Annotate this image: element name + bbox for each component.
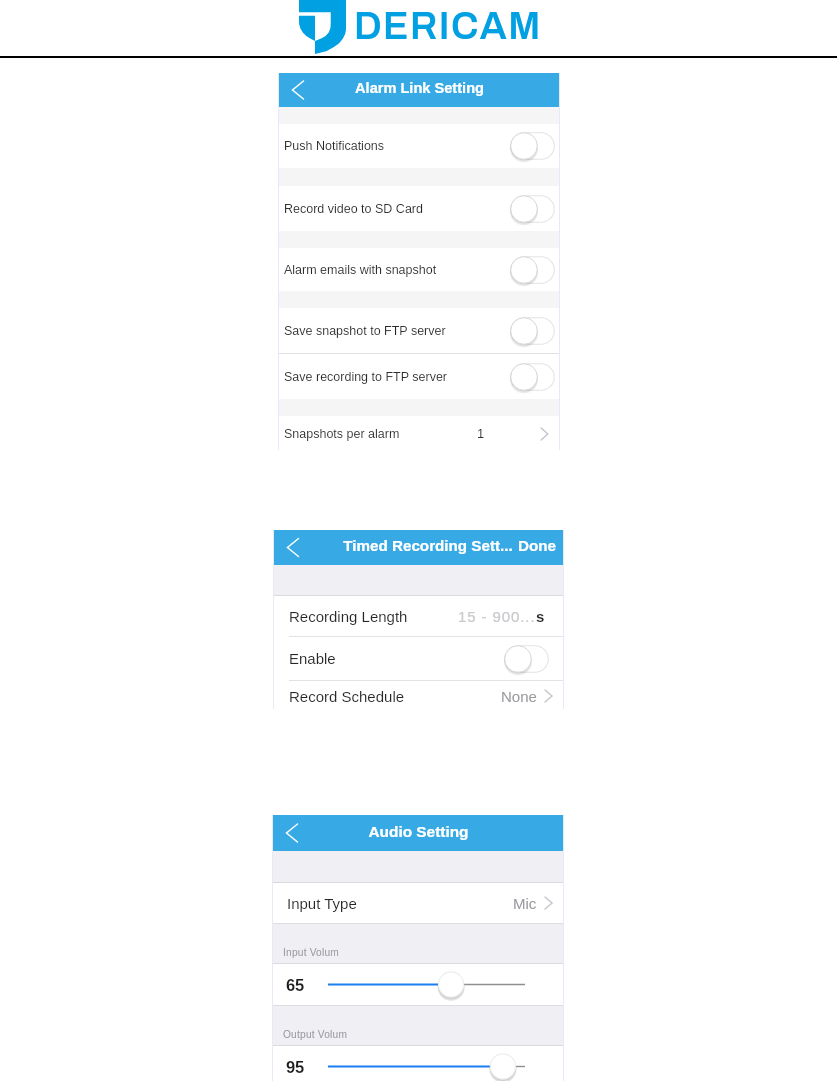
staticText: Push Notifications	[284, 139, 385, 153]
staticText: DERICAM	[354, 6, 542, 47]
button[interactable]: Snapshots per alarm	[279, 416, 559, 451]
button[interactable]: Done	[518, 537, 556, 554]
staticText: Save recording to FTP server	[284, 370, 448, 384]
staticText: Mic	[513, 895, 537, 912]
staticText: Alarm emails with snapshot	[284, 263, 437, 277]
button[interactable]: Back	[273, 815, 313, 851]
staticText: 95	[286, 1058, 304, 1076]
button[interactable]: Input Type	[273, 883, 563, 923]
staticText: None	[501, 688, 537, 705]
button[interactable]: Save snapshot to FTP server	[279, 308, 559, 353]
staticText: Record Schedule	[289, 688, 405, 705]
button[interactable]: Alarm emails with snapshot	[279, 248, 559, 291]
staticText: Output Volum	[283, 1029, 348, 1040]
staticText: Record video to SD Card	[284, 202, 423, 216]
staticText: Alarm Link Setting	[355, 80, 484, 96]
staticText: 15 - 900...	[458, 608, 536, 625]
button[interactable]: Push Notifications	[279, 124, 559, 168]
staticText: 1	[477, 426, 485, 441]
button[interactable]: Record Schedule	[274, 681, 563, 711]
staticText: Input Volum	[283, 947, 340, 958]
staticText: Snapshots per alarm	[284, 427, 400, 441]
button[interactable]: Enable	[274, 637, 563, 680]
staticText: Input Type	[287, 895, 357, 912]
button[interactable]: Back	[274, 530, 314, 565]
staticText: Timed Recording Sett...	[343, 537, 513, 554]
staticText: s	[536, 608, 545, 625]
staticText: Audio Setting	[368, 823, 469, 840]
staticText: Recording Length	[289, 608, 408, 625]
button[interactable]: Record video to SD Card	[279, 186, 559, 231]
staticText: Done	[518, 537, 556, 554]
staticText: Save snapshot to FTP server	[284, 324, 446, 338]
button[interactable]: Recording Length	[274, 596, 563, 636]
button[interactable]: Save recording to FTP server	[279, 354, 559, 399]
staticText: 65	[286, 976, 304, 994]
button[interactable]: Back	[279, 73, 319, 107]
staticText: Enable	[289, 650, 336, 667]
